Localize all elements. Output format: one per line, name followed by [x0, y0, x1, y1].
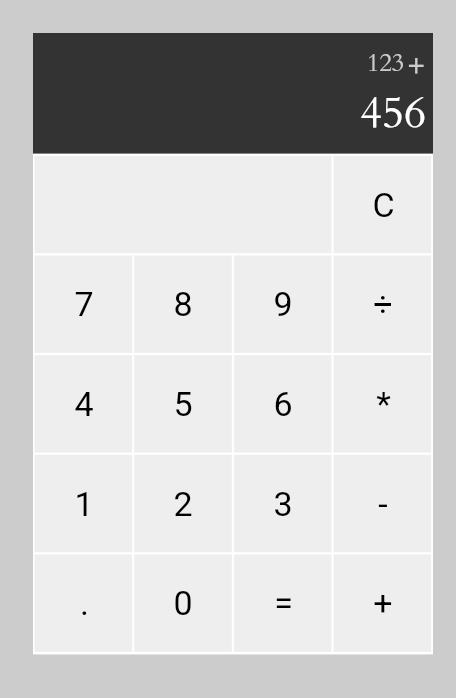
- staticText: 123: [366, 46, 404, 80]
- button[interactable]: 8: [134, 255, 232, 352]
- button[interactable]: 4: [35, 355, 133, 452]
- button[interactable]: 6: [234, 355, 332, 452]
- staticText: -: [378, 484, 388, 524]
- staticText: *: [376, 384, 391, 424]
- staticText: 6: [273, 384, 293, 424]
- staticText: 5: [173, 384, 193, 424]
- button[interactable]: 7: [35, 255, 133, 352]
- button[interactable]: 9: [234, 255, 332, 352]
- staticText: +: [373, 583, 393, 623]
- button[interactable]: 1: [35, 455, 133, 552]
- staticText: 1: [74, 484, 94, 524]
- staticText: .: [80, 583, 89, 623]
- button[interactable]: Divide: [334, 255, 432, 352]
- staticText: 2: [173, 484, 193, 524]
- button[interactable]: 2: [134, 455, 232, 552]
- staticText: C: [372, 185, 395, 225]
- button[interactable]: Multiply: [334, 355, 432, 452]
- staticText: =: [274, 583, 293, 623]
- button[interactable]: 5: [134, 355, 232, 452]
- button[interactable]: 3: [234, 455, 332, 552]
- staticText: 9: [273, 284, 293, 324]
- button[interactable]: Plus: [334, 554, 432, 651]
- button[interactable]: 0: [134, 554, 232, 651]
- button[interactable]: Minus: [334, 455, 432, 552]
- staticText: ÷: [373, 284, 393, 324]
- staticText: 8: [173, 284, 193, 324]
- staticText: 3: [273, 484, 293, 524]
- button[interactable]: Clear: [334, 156, 432, 253]
- staticText: +: [407, 43, 425, 89]
- staticText: 456: [359, 84, 426, 142]
- button[interactable]: Decimal point: [35, 554, 133, 651]
- staticText: 0: [173, 583, 193, 623]
- staticText: 4: [74, 384, 94, 424]
- staticText: 7: [74, 284, 94, 324]
- button[interactable]: Equals: [234, 554, 332, 651]
